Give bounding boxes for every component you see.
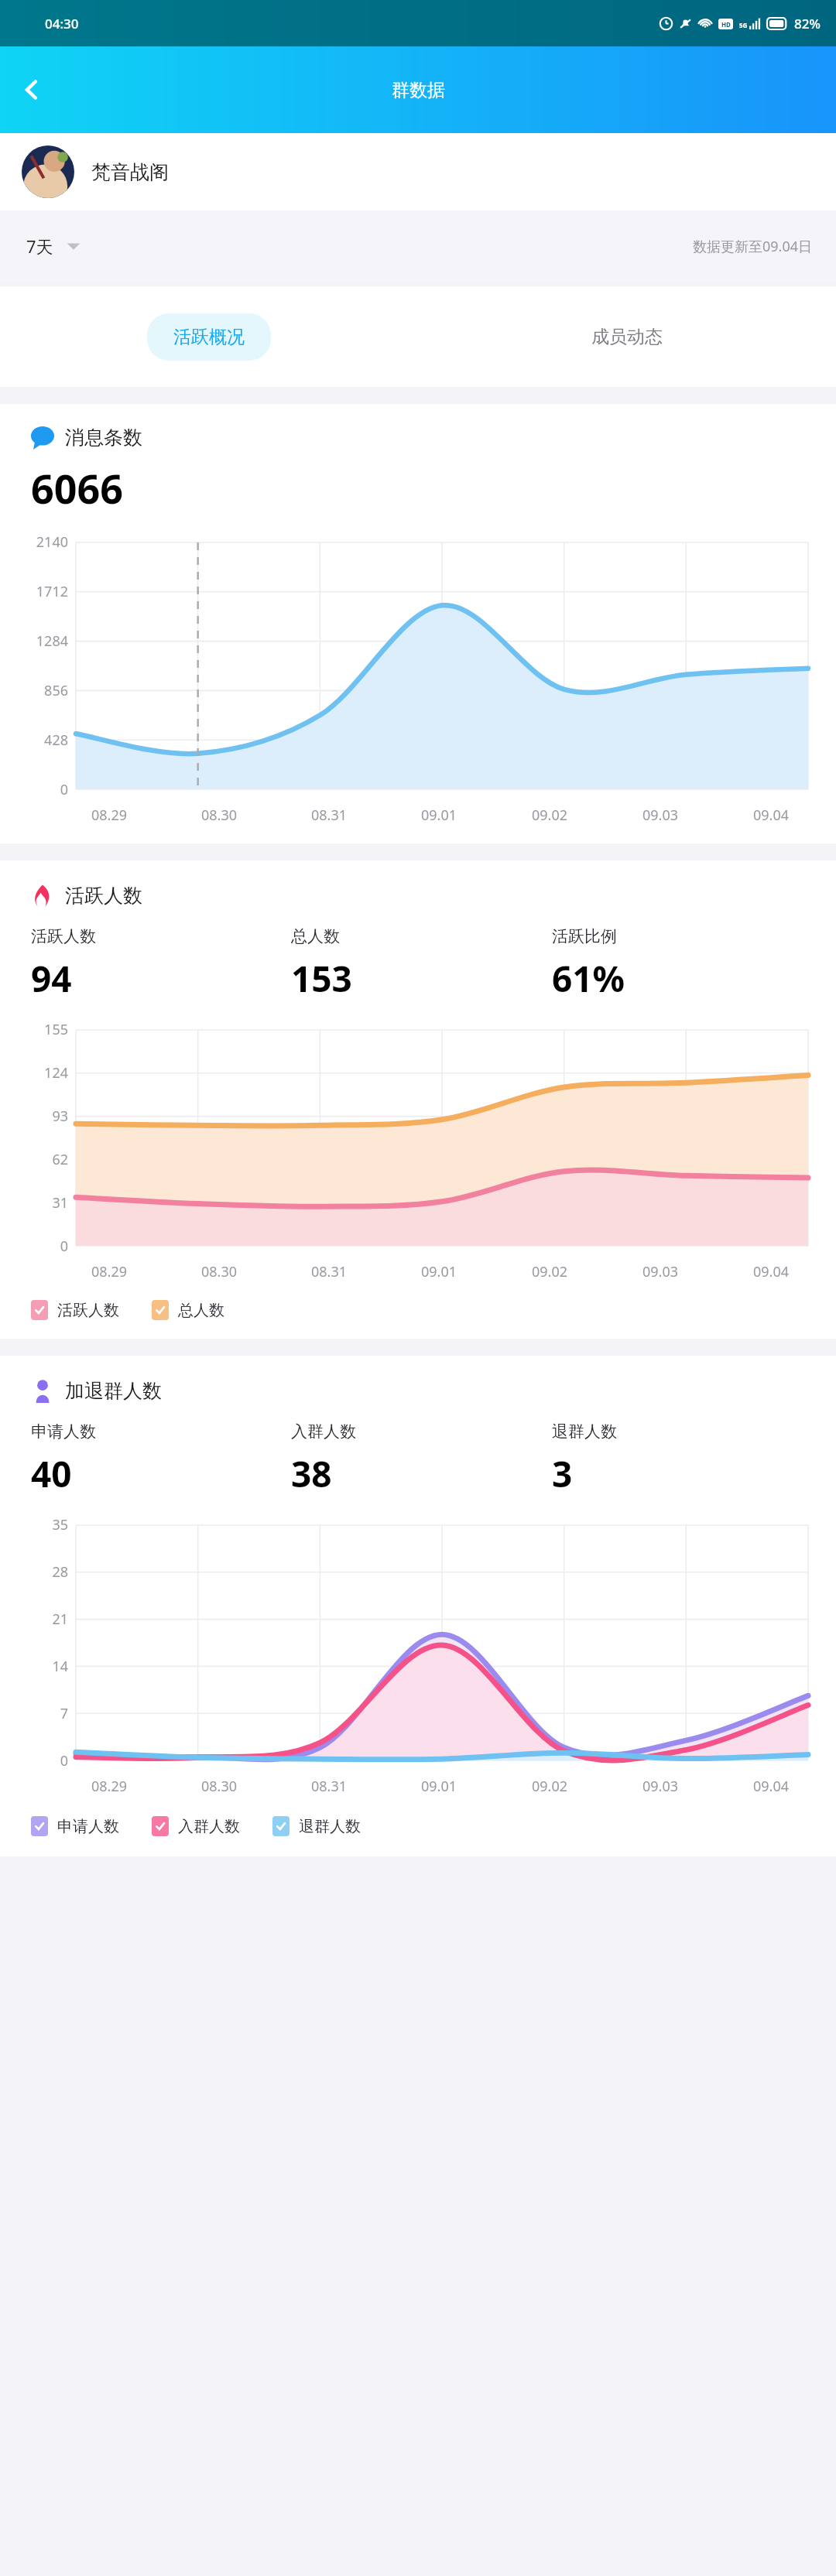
staticText: 08.31 [311,806,348,825]
button[interactable]: 总人数 [152,1297,257,1323]
staticText: 21 [52,1610,68,1629]
staticText: 09.03 [642,1262,679,1281]
staticText: 82% [794,15,821,32]
staticText: 09.03 [642,1777,679,1796]
staticText: 7 [60,1704,68,1723]
button[interactable]: 7天 [23,228,84,264]
staticText: 1712 [36,582,68,601]
staticText: 成员动态 [591,326,663,348]
staticText: 124 [44,1063,68,1083]
staticText: 31 [52,1193,68,1213]
staticText: 总人数 [291,926,340,946]
staticText: 退群人数 [299,1817,361,1836]
staticText: 申请人数 [31,1421,96,1442]
staticText: 3 [552,1449,573,1498]
staticText: 1284 [36,631,68,651]
staticText: 08.31 [311,1262,348,1281]
button[interactable]: 成员动态 [565,313,689,361]
staticText: 38 [291,1449,332,1498]
staticText: 活跃比例 [552,926,617,946]
staticText: 09.03 [642,806,679,825]
staticText: 08.30 [201,1262,238,1281]
button[interactable]: 活跃概况 [147,313,271,361]
staticText: 总人数 [178,1301,224,1320]
staticText: 群数据 [392,79,445,101]
staticText: 活跃人数 [31,926,96,946]
staticText: 93 [52,1107,68,1126]
staticText: 428 [44,730,68,750]
staticText: 35 [52,1515,68,1534]
staticText: 7天 [26,234,53,258]
staticText: 数据更新至09.04日 [693,237,813,256]
staticText: 62 [52,1150,68,1169]
staticText: 09.04 [753,1262,790,1281]
staticText: 09.02 [532,1262,568,1281]
button[interactable]: 退群人数 [272,1813,393,1839]
staticText: 5G [739,21,748,29]
staticText: 0 [60,780,68,799]
staticText: 09.02 [532,806,568,825]
staticText: 08.30 [201,1777,238,1796]
staticText: 04:30 [45,15,79,32]
staticText: 153 [291,954,352,1003]
staticText: 退群人数 [552,1421,617,1442]
staticText: 28 [52,1562,68,1582]
staticText: 入群人数 [291,1421,356,1442]
staticText: 08.29 [91,806,128,825]
staticText: 申请人数 [57,1817,119,1836]
staticText: 活跃概况 [173,326,245,348]
staticText: 08.31 [311,1777,348,1796]
staticText: 856 [44,681,68,700]
staticText: 加退群人数 [65,1379,162,1403]
staticText: 09.04 [753,806,790,825]
staticText: 2140 [36,532,68,552]
staticText: 活跃人数 [65,884,142,908]
staticText: 08.29 [91,1262,128,1281]
button[interactable]: 活跃人数 [31,1297,152,1323]
staticText: 09.01 [421,806,457,825]
button[interactable]: 申请人数 [31,1813,152,1839]
staticText: 09.02 [532,1777,568,1796]
staticText: 61% [552,954,625,1003]
staticText: 08.30 [201,806,238,825]
staticText: 活跃人数 [57,1301,119,1320]
staticText: 40 [31,1449,72,1498]
staticText: 0 [60,1751,68,1770]
staticText: 梵音战阁 [91,160,169,184]
button[interactable]: 梵音战阁 [0,133,836,210]
staticText: 09.01 [421,1777,457,1796]
staticText: 14 [52,1657,68,1676]
staticText: 入群人数 [178,1817,240,1836]
staticText: 6066 [31,460,123,515]
staticText: 155 [44,1020,68,1039]
staticText: 09.01 [421,1262,457,1281]
staticText: HD [721,20,731,29]
button[interactable]: Back [8,66,56,114]
staticText: 94 [31,954,72,1003]
staticText: 09.04 [753,1777,790,1796]
staticText: 0 [60,1237,68,1256]
staticText: 消息条数 [65,426,142,450]
staticText: 08.29 [91,1777,128,1796]
button[interactable]: 入群人数 [152,1813,272,1839]
